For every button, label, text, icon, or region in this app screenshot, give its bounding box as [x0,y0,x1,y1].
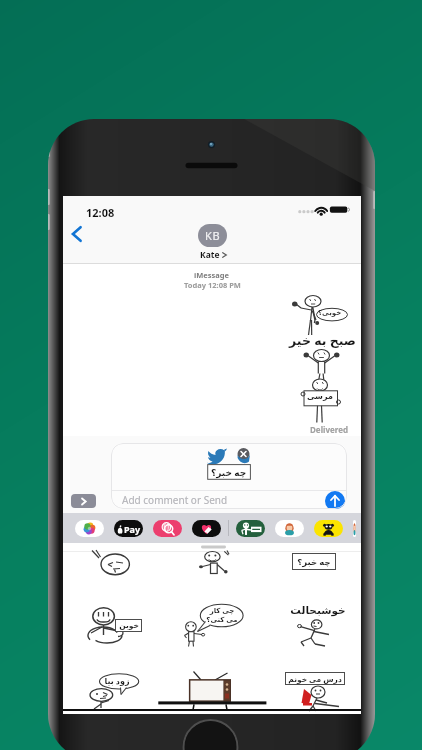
button[interactable]: App [275,520,304,537]
button[interactable]: App [314,520,343,537]
staticText: خوشبحالت [290,604,346,616]
staticText: صبح به خیر [289,332,356,349]
button[interactable]: Contact Kate [198,224,227,247]
staticText: خوبن [119,621,139,630]
staticText: iMessage [194,270,230,280]
staticText: Delivered [310,424,348,435]
staticText: KB [205,228,221,243]
staticText: چی کار می کنی؟ [206,606,238,624]
staticText: Pay [124,523,141,535]
button[interactable]: Show apps [71,494,96,508]
staticText: 12:08 [86,205,115,220]
button[interactable]: Kate [200,249,227,261]
staticText: درس می خونم [288,674,342,684]
staticText: زود بیا [104,675,130,686]
button[interactable]: App [153,520,182,537]
staticText: Today 12:08 PM [184,280,241,290]
staticText: چه خبر؟ [211,466,247,478]
staticText: خوبی؟ [318,309,342,317]
button[interactable]: App [236,520,265,537]
button[interactable]: Add comment or Send [111,491,347,509]
button[interactable]: Send [325,491,345,509]
button[interactable]: App [192,520,221,537]
staticText: مرسی [307,392,333,401]
button[interactable]: App [75,520,104,537]
staticText: چه خبر؟ [297,556,331,568]
button[interactable]: App [114,520,143,537]
staticText: Add comment or Send [122,493,228,507]
staticText: Kate [200,249,220,261]
button[interactable]: App [353,520,356,537]
button[interactable]: Back [67,222,87,246]
